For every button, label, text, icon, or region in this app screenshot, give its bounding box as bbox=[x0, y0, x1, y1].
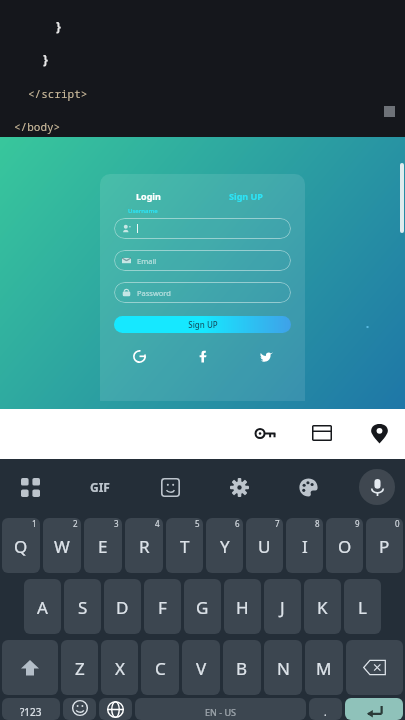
button[interactable]: . bbox=[309, 698, 342, 720]
button[interactable]: Enter bbox=[345, 698, 403, 720]
staticText: N bbox=[277, 657, 290, 680]
staticText: </script> bbox=[28, 86, 88, 101]
staticText: EN - US bbox=[205, 706, 236, 718]
staticText: Sign UP bbox=[229, 190, 263, 202]
staticText: Z bbox=[75, 657, 85, 680]
button[interactable]: Y bbox=[206, 518, 243, 573]
staticText: Y bbox=[220, 535, 230, 558]
staticText: </body> bbox=[14, 119, 61, 134]
staticText: 2 bbox=[73, 518, 78, 529]
button[interactable]: J bbox=[264, 579, 301, 634]
staticText: 7 bbox=[275, 518, 280, 529]
button[interactable]: Sign UP bbox=[114, 316, 291, 333]
button[interactable]: I bbox=[286, 518, 323, 573]
staticText: C bbox=[155, 657, 166, 680]
button[interactable]: H bbox=[224, 579, 261, 634]
staticText: B bbox=[236, 657, 248, 680]
button[interactable]: Change language bbox=[99, 698, 132, 720]
staticText: GIF bbox=[90, 479, 110, 495]
staticText: . bbox=[324, 705, 327, 719]
button[interactable]: Emoji bbox=[63, 698, 96, 720]
staticText: T bbox=[180, 535, 190, 558]
staticText: 6 bbox=[235, 518, 240, 529]
button[interactable]: Themes bbox=[290, 469, 326, 505]
staticText: 1 bbox=[32, 518, 37, 529]
button[interactable]: K bbox=[304, 579, 341, 634]
staticText: P bbox=[379, 535, 390, 558]
staticText: Sign UP bbox=[188, 319, 218, 330]
button[interactable]: Sign in with Facebook bbox=[194, 347, 212, 365]
staticText: A bbox=[37, 596, 48, 619]
button[interactable]: N bbox=[264, 640, 302, 695]
button[interactable]: Passwords bbox=[250, 418, 280, 448]
button[interactable]: X bbox=[101, 640, 138, 695]
staticText: G bbox=[196, 596, 209, 619]
button[interactable]: Email bbox=[114, 250, 291, 271]
button[interactable]: T bbox=[166, 518, 203, 573]
button[interactable]: Q bbox=[2, 518, 40, 573]
button[interactable]: S bbox=[64, 579, 101, 634]
button[interactable]: Sign in with Google bbox=[130, 347, 148, 365]
button[interactable]: G bbox=[184, 579, 221, 634]
button[interactable]: D bbox=[104, 579, 141, 634]
staticText: X bbox=[115, 657, 125, 680]
button[interactable]: A bbox=[24, 579, 61, 634]
button[interactable]: Backspace bbox=[346, 640, 403, 695]
staticText: 8 bbox=[315, 518, 320, 529]
button[interactable]: U bbox=[246, 518, 283, 573]
staticText: V bbox=[196, 657, 207, 680]
button[interactable]: C bbox=[141, 640, 179, 695]
button[interactable]: Voice input bbox=[359, 469, 395, 505]
staticText: E bbox=[98, 535, 108, 558]
staticText: Password bbox=[137, 288, 171, 298]
staticText: W bbox=[54, 535, 70, 558]
staticText: I bbox=[302, 535, 308, 558]
staticText: F bbox=[158, 596, 167, 619]
button[interactable]: Payment methods bbox=[307, 418, 337, 448]
button[interactable] bbox=[114, 218, 291, 239]
staticText: 9 bbox=[355, 518, 360, 529]
staticText: J bbox=[280, 596, 285, 619]
button[interactable]: W bbox=[43, 518, 81, 573]
button[interactable]: E bbox=[84, 518, 122, 573]
button[interactable]: O bbox=[326, 518, 363, 573]
button[interactable]: L bbox=[344, 579, 381, 634]
staticText: U bbox=[258, 535, 271, 558]
button[interactable]: Addresses bbox=[364, 418, 394, 448]
button[interactable]: F bbox=[144, 579, 181, 634]
staticText: Username bbox=[128, 207, 158, 215]
staticText: O bbox=[338, 535, 352, 558]
staticText: Login bbox=[136, 190, 161, 202]
staticText: 3 bbox=[114, 518, 119, 529]
button[interactable]: Apps bbox=[12, 469, 48, 505]
button[interactable]: Settings bbox=[221, 469, 257, 505]
staticText: H bbox=[236, 596, 249, 619]
button[interactable]: GIF bbox=[82, 471, 118, 503]
button[interactable]: ?123 bbox=[2, 698, 60, 720]
staticText: R bbox=[139, 535, 150, 558]
staticText: } bbox=[42, 51, 50, 67]
staticText: D bbox=[116, 596, 129, 619]
staticText: L bbox=[358, 596, 367, 619]
button[interactable]: Password bbox=[114, 282, 291, 303]
staticText: Email bbox=[137, 256, 157, 266]
button[interactable]: Z bbox=[61, 640, 98, 695]
button[interactable]: V bbox=[182, 640, 220, 695]
button[interactable]: B bbox=[223, 640, 261, 695]
button[interactable]: P bbox=[366, 518, 403, 573]
staticText: S bbox=[78, 596, 88, 619]
staticText: 4 bbox=[155, 518, 160, 529]
staticText: M bbox=[316, 657, 332, 680]
staticText: Q bbox=[14, 535, 28, 558]
button[interactable]: R bbox=[125, 518, 163, 573]
staticText: K bbox=[317, 596, 328, 619]
button[interactable]: Sign UP bbox=[225, 188, 267, 204]
staticText: } bbox=[55, 18, 63, 34]
button[interactable]: Login bbox=[132, 188, 165, 204]
button[interactable]: Stickers bbox=[152, 469, 188, 505]
button[interactable]: Shift bbox=[2, 640, 58, 695]
button[interactable]: M bbox=[305, 640, 343, 695]
button[interactable]: Sign in with Twitter bbox=[257, 347, 275, 365]
staticText: 0 bbox=[395, 518, 400, 529]
button[interactable]: EN - US bbox=[135, 698, 306, 720]
